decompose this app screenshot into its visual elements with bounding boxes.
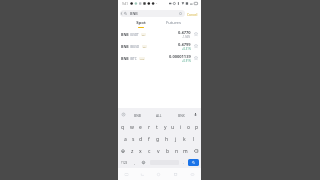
button[interactable]: b bbox=[163, 145, 172, 157]
staticText: a bbox=[124, 136, 127, 143]
button[interactable]: d bbox=[137, 133, 145, 145]
staticText: o bbox=[187, 124, 191, 131]
staticText: /USDT bbox=[130, 33, 139, 37]
button[interactable]: BNX bbox=[170, 108, 192, 121]
button[interactable]: BNB bbox=[118, 52, 201, 64]
staticText: -1.94% bbox=[182, 35, 191, 39]
button[interactable]: Backspace bbox=[190, 145, 201, 157]
button[interactable]: c bbox=[145, 145, 154, 157]
staticText: . bbox=[183, 160, 184, 165]
button[interactable]: Clear bbox=[178, 11, 183, 16]
button[interactable]: u bbox=[169, 121, 177, 133]
button[interactable]: j bbox=[171, 133, 180, 145]
staticText: ?123 bbox=[121, 161, 128, 165]
button[interactable]: Emoji bbox=[138, 157, 149, 168]
button[interactable]: p bbox=[193, 121, 201, 133]
staticText: 10x bbox=[140, 57, 144, 60]
button[interactable]: x bbox=[136, 145, 145, 157]
button[interactable]: Back bbox=[119, 11, 124, 16]
staticText: y bbox=[164, 124, 167, 131]
staticText: +0.31% bbox=[182, 47, 191, 51]
button[interactable]: BNB bbox=[118, 40, 201, 52]
staticText: j bbox=[175, 136, 177, 143]
button[interactable]: f bbox=[145, 133, 153, 145]
staticText: p bbox=[195, 124, 199, 131]
staticText: b bbox=[166, 148, 170, 155]
button[interactable]: z bbox=[128, 145, 136, 157]
staticText: 5x bbox=[142, 33, 145, 36]
staticText: w bbox=[130, 124, 134, 131]
button[interactable]: Clipboard bbox=[120, 111, 127, 118]
button[interactable]: a bbox=[121, 133, 129, 145]
button[interactable]: s bbox=[129, 133, 137, 145]
button[interactable]: r bbox=[145, 121, 153, 133]
staticText: BNX bbox=[178, 113, 185, 117]
staticText: q bbox=[121, 124, 125, 131]
staticText: 5x bbox=[143, 45, 146, 48]
button[interactable]: Home bbox=[118, 168, 134, 180]
staticText: 0.4799 bbox=[178, 42, 191, 47]
button[interactable]: m bbox=[181, 145, 190, 157]
button[interactable]: l bbox=[189, 133, 198, 145]
button[interactable]: i bbox=[177, 121, 185, 133]
staticText: c bbox=[148, 148, 151, 155]
staticText: ALL bbox=[156, 113, 162, 117]
staticText: v bbox=[157, 148, 160, 155]
button[interactable]: , bbox=[131, 157, 138, 168]
staticText: m bbox=[183, 148, 188, 155]
staticText: h bbox=[165, 136, 169, 143]
staticText: n bbox=[175, 148, 179, 155]
button[interactable]: BNB bbox=[118, 28, 201, 40]
staticText: BNB bbox=[134, 113, 141, 117]
staticText: /BUSD bbox=[130, 45, 140, 49]
button[interactable]: Cancel bbox=[186, 8, 199, 19]
staticText: e bbox=[139, 124, 142, 131]
staticText: 0.00001139 bbox=[169, 54, 191, 59]
staticText: 0.4770 bbox=[178, 30, 191, 35]
staticText: , bbox=[134, 160, 135, 165]
button[interactable] bbox=[120, 10, 185, 17]
button[interactable]: q bbox=[118, 121, 127, 133]
staticText: d bbox=[139, 136, 143, 143]
button[interactable]: e bbox=[136, 121, 145, 133]
button[interactable]: k bbox=[180, 133, 189, 145]
staticText: g bbox=[156, 136, 160, 143]
staticText: BNB bbox=[121, 32, 129, 37]
staticText: i bbox=[180, 124, 182, 131]
button[interactable]: Add to favourites bbox=[193, 55, 199, 61]
staticText: BNB bbox=[121, 44, 129, 49]
button[interactable]: ?123 bbox=[118, 157, 131, 168]
button[interactable]: Voice input bbox=[192, 111, 199, 118]
button[interactable]: Add to favourites bbox=[193, 43, 199, 49]
staticText: t bbox=[156, 124, 158, 131]
button[interactable]: ALL bbox=[148, 108, 170, 121]
button[interactable]: t bbox=[153, 121, 161, 133]
staticText: +0.91% bbox=[182, 59, 191, 63]
button[interactable]: Futures bbox=[167, 168, 184, 180]
button[interactable]: Spot bbox=[131, 19, 151, 29]
button[interactable]: o bbox=[185, 121, 193, 133]
button[interactable]: Add to favourites bbox=[193, 31, 199, 37]
button[interactable]: Search bbox=[188, 159, 199, 166]
button[interactable]: BNB bbox=[127, 108, 148, 121]
button[interactable]: v bbox=[154, 145, 163, 157]
staticText: f bbox=[148, 136, 150, 143]
staticText: BNB bbox=[130, 11, 138, 16]
staticText: BNB bbox=[121, 56, 129, 61]
button[interactable]: h bbox=[162, 133, 171, 145]
button[interactable]: Futures bbox=[161, 19, 185, 29]
staticText: Spot bbox=[136, 20, 146, 26]
button[interactable]: Shift bbox=[118, 145, 128, 157]
staticText: 9:41 bbox=[122, 2, 129, 6]
button[interactable]: y bbox=[161, 121, 169, 133]
button[interactable]: g bbox=[153, 133, 162, 145]
staticText: s bbox=[132, 136, 135, 143]
button[interactable]: w bbox=[127, 121, 136, 133]
button[interactable]: n bbox=[172, 145, 181, 157]
staticText: x bbox=[139, 148, 142, 155]
